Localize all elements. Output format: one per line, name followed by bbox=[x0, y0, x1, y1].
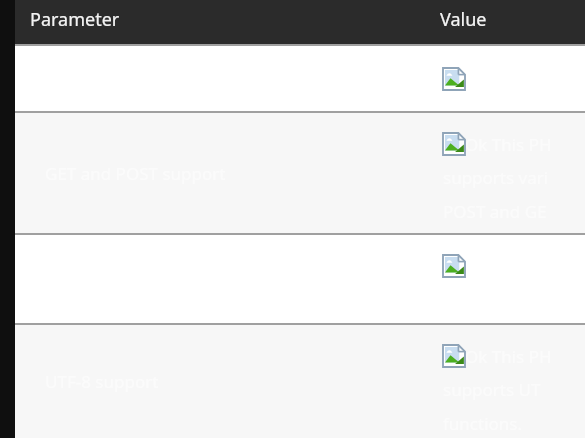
button[interactable]: Image failed to load bbox=[15, 46, 585, 111]
staticText: Value bbox=[440, 7, 487, 32]
button[interactable]: Image failed to load bbox=[15, 235, 585, 323]
staticText: Parameter bbox=[30, 7, 120, 32]
other: Image failed to load bbox=[443, 345, 465, 367]
other: Image failed to load bbox=[443, 133, 465, 155]
other: Image failed to load bbox=[443, 255, 465, 277]
staticText: Ok This PH bbox=[465, 133, 552, 156]
button[interactable]: GET and POST support bbox=[15, 113, 585, 233]
other: Image failed to load bbox=[443, 68, 465, 90]
button[interactable]: UTF-8 support bbox=[15, 325, 585, 438]
staticText: Ok This PH bbox=[465, 345, 552, 368]
